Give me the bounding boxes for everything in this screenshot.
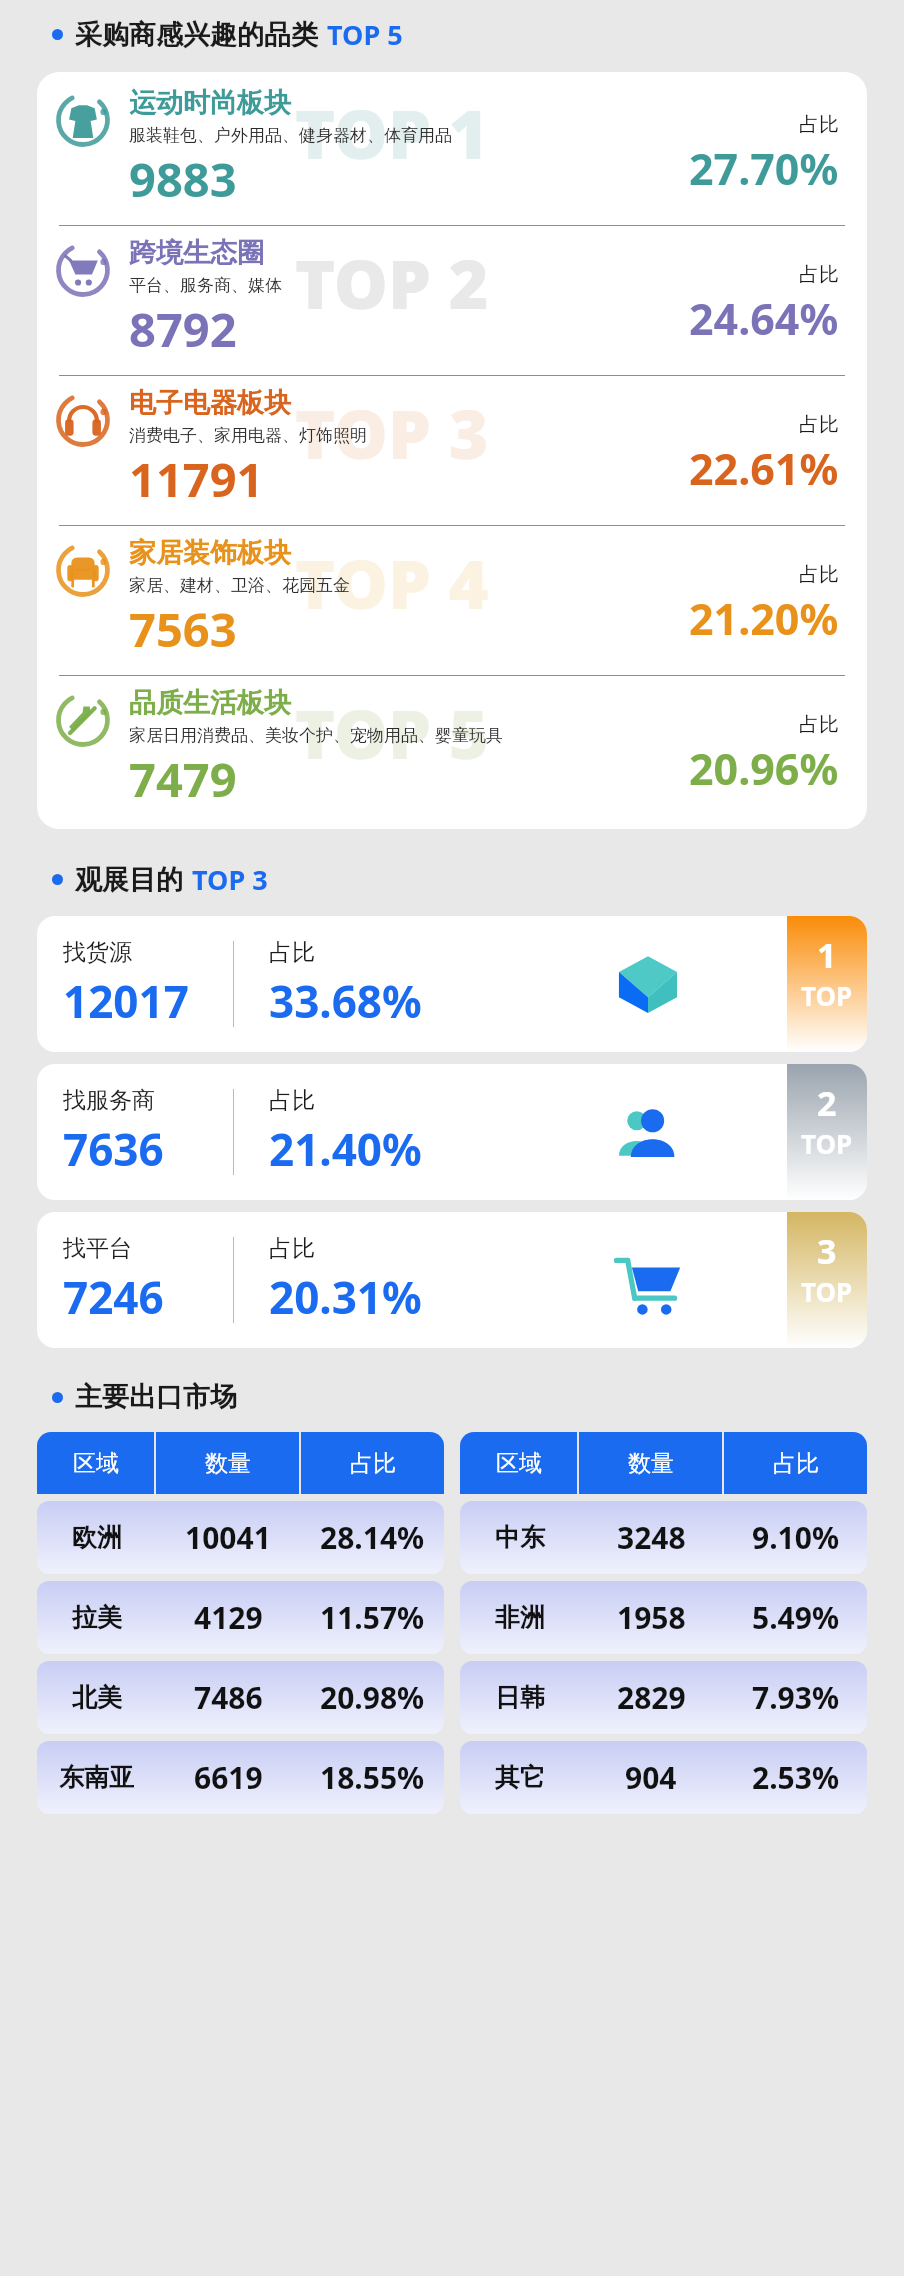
staticText: 运动时尚板块 bbox=[129, 86, 291, 120]
staticText: TOP 3 bbox=[295, 386, 489, 479]
staticText: 5.49% bbox=[752, 1597, 839, 1638]
staticText: 北美 bbox=[72, 1682, 122, 1713]
staticText: 1 bbox=[817, 932, 837, 978]
staticText: TOP bbox=[801, 1274, 853, 1309]
button[interactable]: TOP 5 bbox=[37, 676, 867, 825]
staticText: 非洲 bbox=[495, 1602, 545, 1633]
staticText: 3248 bbox=[617, 1517, 686, 1558]
staticText: 20.98% bbox=[320, 1677, 425, 1718]
staticText: 其它 bbox=[495, 1762, 545, 1793]
staticText: 11791 bbox=[129, 447, 264, 511]
staticText: 904 bbox=[625, 1757, 677, 1798]
staticText: 占比 bbox=[269, 1234, 315, 1263]
staticText: 7.93% bbox=[752, 1677, 839, 1718]
button[interactable]: TOP 4 bbox=[37, 526, 867, 675]
staticText: 占比 bbox=[799, 412, 839, 437]
staticText: 21.20% bbox=[689, 589, 839, 648]
staticText: 拉美 bbox=[72, 1602, 122, 1633]
staticText: 占比 bbox=[773, 1449, 819, 1478]
staticText: 7486 bbox=[194, 1677, 263, 1718]
staticText: 1958 bbox=[617, 1597, 686, 1638]
staticText: 主要出口市场 bbox=[75, 1380, 237, 1414]
staticText: 消费电子、家用电器、灯饰照明 bbox=[129, 425, 367, 446]
staticText: 27.70% bbox=[689, 139, 839, 198]
staticText: 33.68% bbox=[269, 971, 422, 1031]
staticText: 占比 bbox=[799, 712, 839, 737]
button[interactable]: 1 bbox=[37, 916, 867, 1052]
other: Find platforms bbox=[613, 1245, 683, 1315]
button[interactable]: TOP 3 bbox=[37, 376, 867, 525]
staticText: 22.61% bbox=[689, 439, 839, 498]
staticText: 占比 bbox=[799, 562, 839, 587]
staticText: 2.53% bbox=[752, 1757, 839, 1798]
staticText: 找服务商 bbox=[63, 1086, 155, 1115]
staticText: 区域 bbox=[496, 1449, 542, 1478]
staticText: 占比 bbox=[269, 938, 315, 967]
staticText: 7563 bbox=[129, 597, 237, 661]
staticText: 区域 bbox=[73, 1449, 119, 1478]
staticText: TOP 2 bbox=[295, 236, 489, 329]
other: Find service providers bbox=[615, 1099, 681, 1165]
staticText: 21.40% bbox=[269, 1119, 422, 1179]
staticText: 3 bbox=[817, 1228, 837, 1274]
button[interactable]: 3 bbox=[37, 1212, 867, 1348]
staticText: 电子电器板块 bbox=[129, 386, 291, 420]
staticText: TOP 1 bbox=[295, 86, 489, 179]
staticText: 2 bbox=[817, 1080, 837, 1126]
staticText: 找平台 bbox=[63, 1234, 132, 1263]
staticText: TOP 4 bbox=[295, 536, 489, 629]
button[interactable]: TOP 1 bbox=[37, 76, 867, 225]
staticText: 20.96% bbox=[689, 739, 839, 798]
button[interactable]: TOP 2 bbox=[37, 226, 867, 375]
other: Find suppliers bbox=[615, 951, 681, 1017]
staticText: 观展目的 bbox=[75, 863, 183, 897]
staticText: 采购商感兴趣的品类 bbox=[75, 18, 318, 52]
staticText: 中东 bbox=[495, 1522, 545, 1553]
staticText: 品质生活板块 bbox=[129, 686, 291, 720]
staticText: 平台、服务商、媒体 bbox=[129, 275, 282, 296]
staticText: 7479 bbox=[129, 747, 237, 811]
staticText: 家居、建材、卫浴、花园五金 bbox=[129, 575, 350, 596]
staticText: 7636 bbox=[63, 1119, 164, 1179]
staticText: 数量 bbox=[628, 1449, 674, 1478]
staticText: 9.10% bbox=[752, 1517, 839, 1558]
staticText: 东南亚 bbox=[59, 1762, 134, 1793]
staticText: 7246 bbox=[63, 1267, 164, 1327]
staticText: 18.55% bbox=[320, 1757, 425, 1798]
staticText: 占比 bbox=[350, 1449, 396, 1478]
staticText: 2829 bbox=[617, 1677, 686, 1718]
staticText: 占比 bbox=[269, 1086, 315, 1115]
staticText: TOP 5 bbox=[327, 16, 403, 53]
staticText: 4129 bbox=[194, 1597, 263, 1638]
staticText: TOP 5 bbox=[295, 686, 489, 779]
staticText: TOP bbox=[801, 1126, 853, 1161]
staticText: 12017 bbox=[63, 971, 189, 1031]
staticText: 8792 bbox=[129, 297, 237, 361]
staticText: 10041 bbox=[185, 1517, 271, 1558]
staticText: 20.31% bbox=[269, 1267, 422, 1327]
staticText: 跨境生态圈 bbox=[129, 236, 264, 270]
staticText: TOP bbox=[801, 978, 853, 1013]
staticText: 数量 bbox=[205, 1449, 251, 1478]
staticText: 找货源 bbox=[63, 938, 132, 967]
staticText: 日韩 bbox=[495, 1682, 545, 1713]
staticText: 24.64% bbox=[689, 289, 839, 348]
staticText: TOP 3 bbox=[192, 861, 268, 898]
button[interactable]: 2 bbox=[37, 1064, 867, 1200]
staticText: 6619 bbox=[194, 1757, 263, 1798]
staticText: 28.14% bbox=[320, 1517, 425, 1558]
staticText: 11.57% bbox=[320, 1597, 425, 1638]
staticText: 9883 bbox=[129, 147, 237, 211]
staticText: 家居装饰板块 bbox=[129, 536, 291, 570]
staticText: 欧洲 bbox=[72, 1522, 122, 1553]
staticText: 占比 bbox=[799, 112, 839, 137]
staticText: 占比 bbox=[799, 262, 839, 287]
staticText: 服装鞋包、户外用品、健身器材、体育用品 bbox=[129, 125, 452, 146]
staticText: 家居日用消费品、美妆个护、宠物用品、婴童玩具 bbox=[129, 725, 503, 746]
